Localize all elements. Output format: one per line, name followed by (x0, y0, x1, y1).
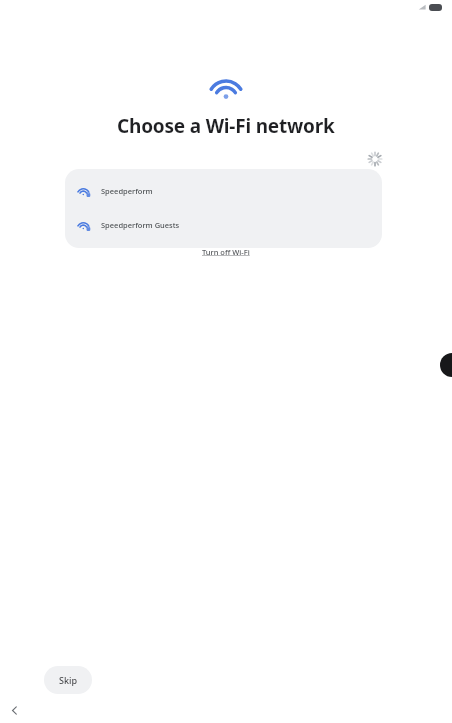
button[interactable]: Skip (44, 666, 92, 694)
staticText: Turn off Wi-Fi (202, 247, 250, 257)
button[interactable]: Scanning for Wi-Fi networks (366, 150, 384, 168)
staticText: Choose a Wi-Fi network (117, 113, 335, 139)
staticText: Skip (59, 674, 77, 686)
staticText: Speedperform Guests (101, 220, 180, 230)
button[interactable]: Turn off Wi-Fi (196, 245, 256, 259)
button[interactable]: Speedperform Guests (65, 198, 382, 232)
button[interactable]: Back (4, 700, 24, 720)
button[interactable]: Speedperform (65, 169, 382, 198)
staticText: Speedperform (101, 186, 153, 196)
